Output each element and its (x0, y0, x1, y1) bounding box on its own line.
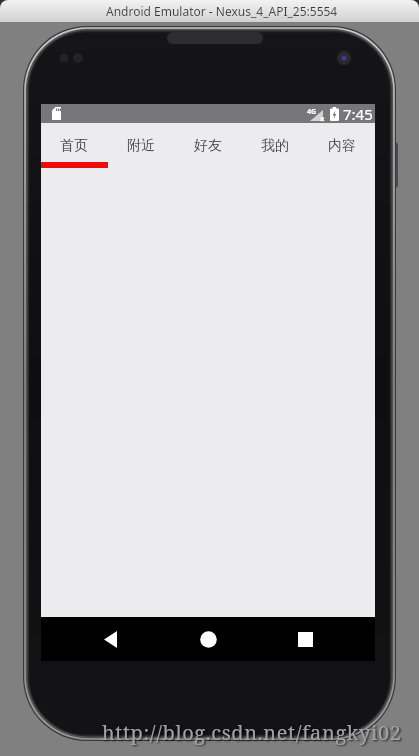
staticText: Android Emulator - Nexus_4_API_25:5554 (106, 3, 338, 19)
button[interactable] (194, 626, 222, 652)
staticText: 内容 (328, 137, 356, 155)
staticText: 7:45 (343, 104, 373, 123)
staticText: 我的 (261, 137, 289, 155)
staticText: 好友 (194, 137, 222, 155)
button[interactable] (97, 626, 124, 652)
button[interactable]: 首页 (41, 123, 107, 168)
button[interactable]: 内容 (308, 123, 375, 168)
button[interactable]: 好友 (174, 123, 241, 168)
button[interactable]: 我的 (241, 123, 308, 168)
button[interactable]: 附近 (107, 123, 174, 168)
staticText: 4G (307, 107, 317, 117)
button[interactable] (292, 626, 319, 652)
staticText: http://blog.csdn.net/fangkyi02 (102, 719, 402, 746)
staticText: 首页 (60, 137, 88, 155)
staticText: 附近 (127, 137, 155, 155)
